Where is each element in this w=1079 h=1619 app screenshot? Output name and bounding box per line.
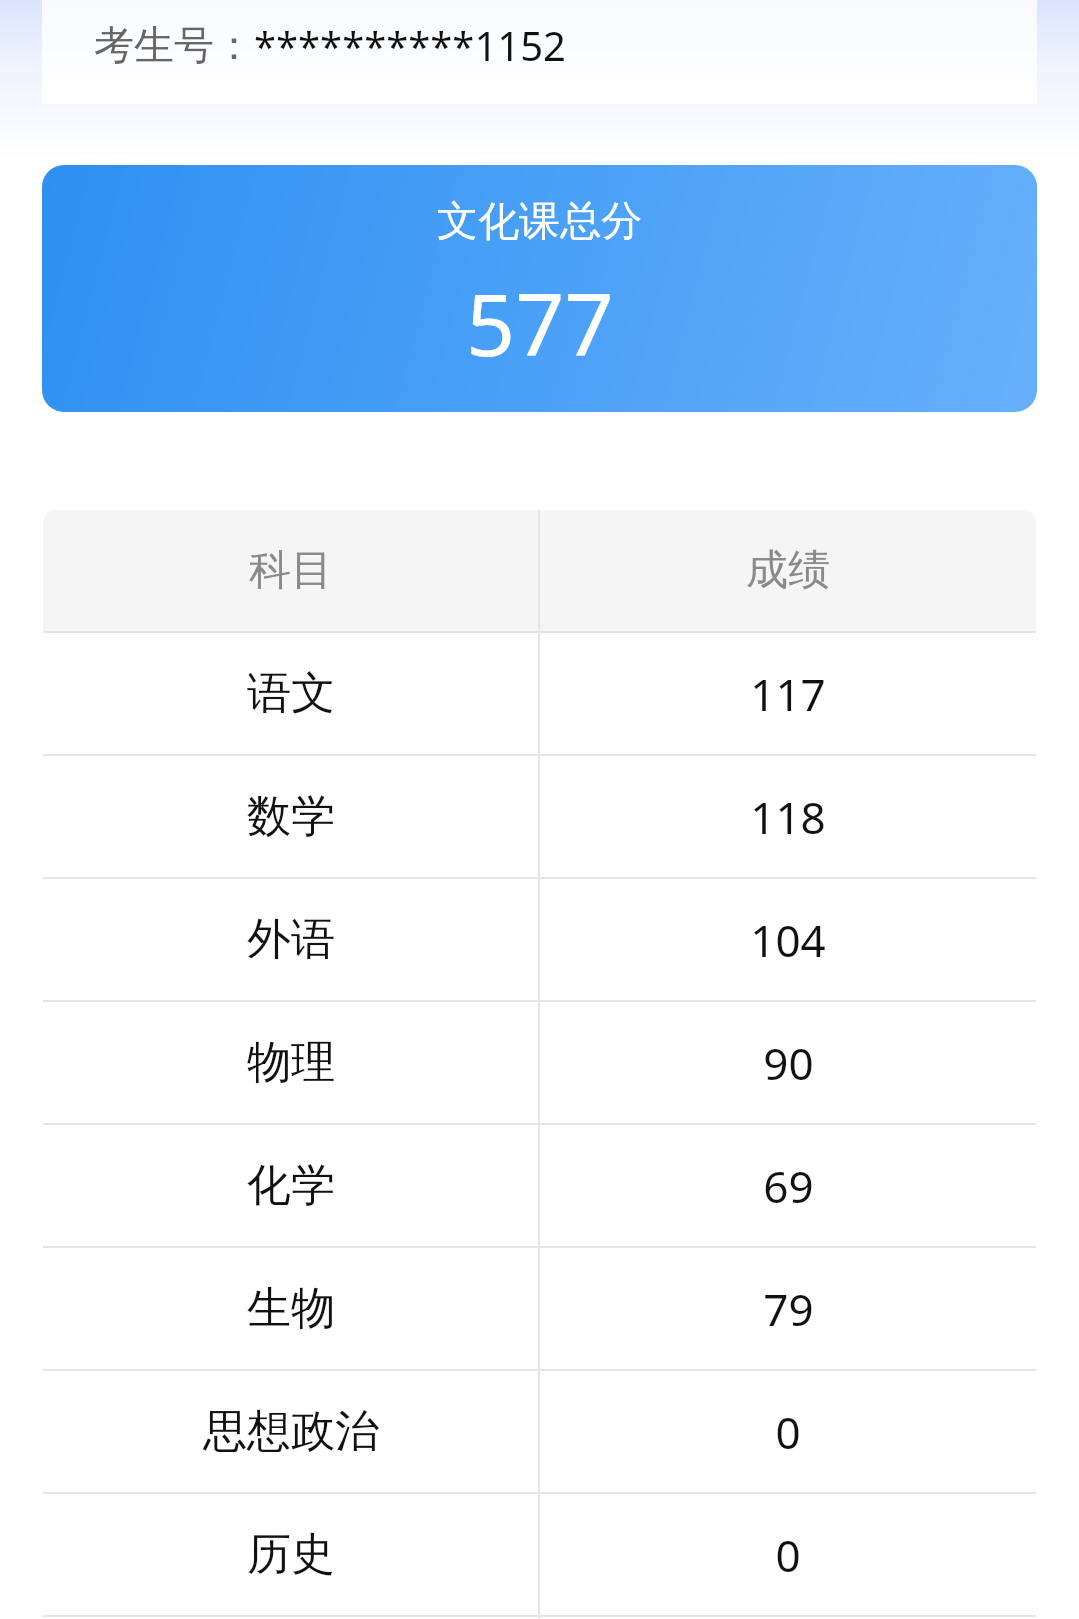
button[interactable]: 科目 [43,510,1036,631]
staticText: 成绩 [746,544,830,597]
staticText: 物理 [247,1035,335,1090]
staticText: 79 [763,1279,814,1339]
staticText: 117 [750,664,826,724]
button[interactable]: 外语 [43,879,1036,1000]
button[interactable]: 历史 [43,1494,1036,1615]
button[interactable]: 数学 [43,756,1036,877]
staticText: 577 [466,264,614,381]
staticText: 0 [775,1525,801,1585]
staticText: 104 [750,910,826,970]
button[interactable]: 语文 [43,633,1036,754]
staticText: 文化课总分 [437,196,642,248]
staticText: 科目 [249,544,333,597]
button[interactable]: 文化课总分 [42,165,1037,412]
button[interactable]: 生物 [43,1248,1036,1369]
button[interactable]: 化学 [43,1125,1036,1246]
button[interactable]: 思想政治 [43,1371,1036,1492]
staticText: 考生号： [94,20,254,70]
staticText: 118 [750,787,826,847]
staticText: **********1152 [254,18,566,72]
staticText: 语文 [247,666,335,721]
staticText: 历史 [247,1527,335,1582]
button[interactable]: 考生号： [42,0,1037,104]
staticText: 思想政治 [203,1404,379,1459]
staticText: 数学 [247,789,335,844]
staticText: 0 [775,1402,801,1462]
button[interactable]: 物理 [43,1002,1036,1123]
staticText: 外语 [247,912,335,967]
staticText: 69 [763,1156,814,1216]
staticText: 生物 [247,1281,335,1336]
staticText: 化学 [247,1158,335,1213]
staticText: 90 [763,1033,814,1093]
